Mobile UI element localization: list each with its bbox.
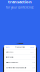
staticText: Save [30,46,34,48]
button[interactable]: Reference [4,50,36,55]
staticText: transaction [8,0,32,4]
button[interactable]: Back [5,46,11,49]
staticText: for your conference [6,6,34,9]
staticText: Reference [6,51,14,53]
staticText: Back [6,46,10,48]
button[interactable]: Delivery address [4,60,36,65]
staticText: Transaction [15,46,25,48]
button[interactable]: Payment method and details [4,65,36,70]
staticText: Delivery address [6,62,19,63]
staticText: Edit [32,67,34,69]
staticText: Client name [6,56,14,58]
button[interactable]: Client name [4,55,36,60]
button[interactable]: Save [29,46,35,49]
staticText: Payment method and details [6,67,27,69]
button[interactable]: Summary [4,70,36,72]
staticText: 0012 [30,51,34,53]
